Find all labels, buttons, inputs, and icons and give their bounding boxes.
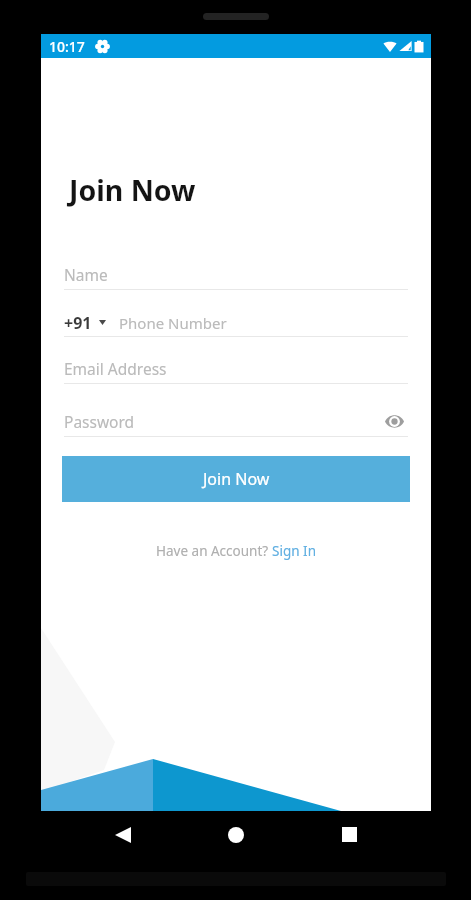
button[interactable]: Home	[208, 811, 264, 858]
staticText: Join Now	[69, 171, 196, 210]
staticText: Password	[64, 411, 385, 432]
button[interactable]: Sign In	[272, 542, 316, 560]
button[interactable]: Recent apps	[321, 811, 377, 858]
button[interactable]: +91	[62, 309, 410, 337]
button[interactable]: Show password	[385, 414, 404, 429]
staticText: Name	[64, 264, 408, 285]
button[interactable]: Name	[62, 262, 410, 290]
button[interactable]: Password	[62, 409, 410, 437]
staticText: Have an Account?	[156, 542, 272, 560]
button[interactable]: Join Now	[62, 456, 410, 502]
staticText: +91	[64, 312, 92, 334]
staticText: Email Address	[64, 358, 408, 379]
staticText: Phone Number	[119, 313, 227, 333]
button[interactable]: Back	[95, 811, 151, 858]
button[interactable]: Email Address	[62, 356, 410, 384]
staticText: 10:17	[49, 37, 85, 56]
staticText: Join Now	[203, 468, 270, 490]
